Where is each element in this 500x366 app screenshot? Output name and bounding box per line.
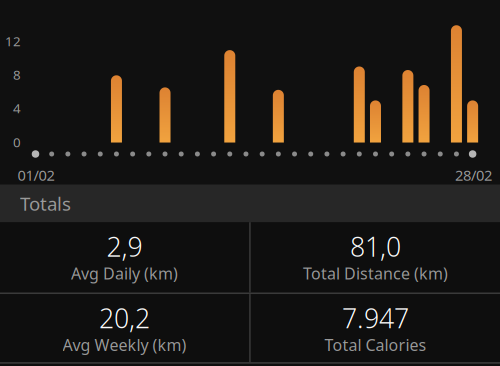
- staticText: 0: [13, 133, 21, 151]
- staticText: Total Calories: [324, 334, 426, 355]
- staticText: Total Distance (km): [303, 263, 448, 284]
- button[interactable]: 81,0: [251, 222, 500, 292]
- staticText: 2,9: [107, 229, 143, 264]
- staticText: Avg Weekly (km): [63, 334, 187, 355]
- staticText: 01/02: [17, 165, 54, 185]
- staticText: 20,2: [99, 300, 150, 336]
- staticText: 4: [13, 99, 21, 117]
- staticText: 28/02: [455, 165, 492, 185]
- staticText: 12: [5, 32, 21, 50]
- staticText: Avg Daily (km): [71, 263, 178, 284]
- staticText: 81,0: [350, 229, 401, 264]
- button[interactable]: 7.947: [251, 294, 500, 362]
- staticText: 8: [13, 66, 21, 83]
- staticText: 7.947: [342, 300, 409, 336]
- staticText: Totals: [20, 191, 71, 216]
- button[interactable]: 2,9: [0, 222, 249, 292]
- button[interactable]: 20,2: [0, 294, 249, 362]
- button[interactable]: Totals: [0, 184, 500, 222]
